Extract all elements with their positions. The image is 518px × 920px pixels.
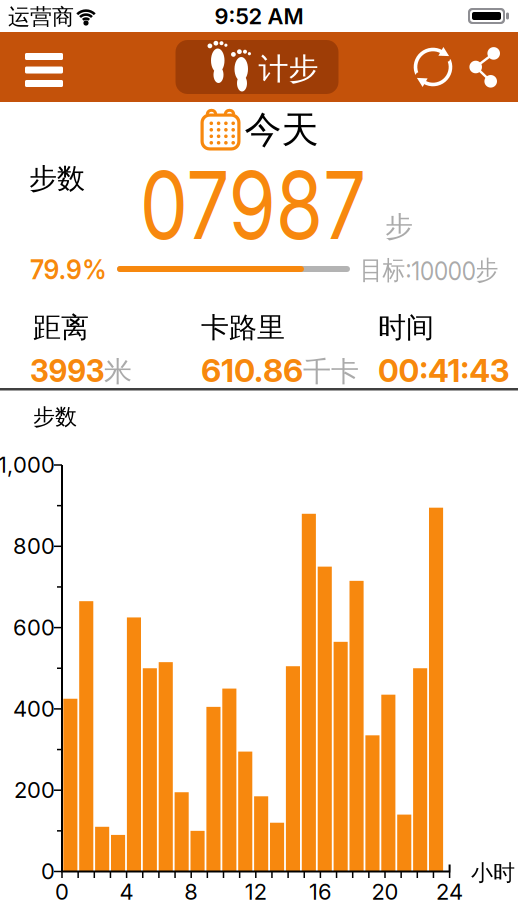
staticText: 800	[13, 533, 55, 559]
button[interactable]	[464, 46, 506, 89]
staticText: 小时	[471, 859, 515, 887]
staticText: 米	[104, 354, 132, 389]
staticText: 计步	[258, 50, 318, 88]
staticText: 步数	[33, 403, 77, 431]
staticText: 400	[13, 695, 55, 722]
staticText: 目标:10000步	[360, 254, 518, 287]
staticText: 今天	[244, 107, 318, 153]
staticText: 600	[13, 614, 55, 641]
staticText: 1,000	[0, 451, 55, 478]
button[interactable]	[25, 53, 63, 87]
staticText: 3993	[30, 351, 110, 390]
button[interactable]: 计步	[175, 40, 338, 94]
staticText: 卡路里	[201, 310, 285, 345]
button[interactable]: 今天	[0, 102, 518, 158]
staticText: 0	[55, 878, 69, 905]
staticText: 运营商	[8, 3, 74, 31]
staticText: 4	[120, 878, 134, 905]
staticText: 20	[371, 878, 398, 905]
button[interactable]	[411, 45, 455, 89]
staticText: 07987	[114, 148, 392, 262]
staticText: 距离	[33, 310, 89, 345]
staticText: 8	[184, 878, 198, 905]
staticText: 步	[385, 209, 413, 244]
staticText: 9:52 AM	[214, 3, 303, 30]
staticText: 24	[436, 878, 463, 905]
staticText: 00:41:43	[378, 351, 512, 390]
staticText: 12	[245, 878, 267, 905]
staticText: 79.9%	[30, 252, 115, 286]
staticText: 200	[14, 777, 55, 803]
staticText: 0	[41, 858, 55, 885]
staticText: 千卡	[303, 354, 359, 389]
staticText: 16	[309, 878, 332, 905]
staticText: 步数	[29, 161, 85, 196]
staticText: 610.86	[201, 351, 303, 390]
staticText: 时间	[378, 310, 434, 345]
